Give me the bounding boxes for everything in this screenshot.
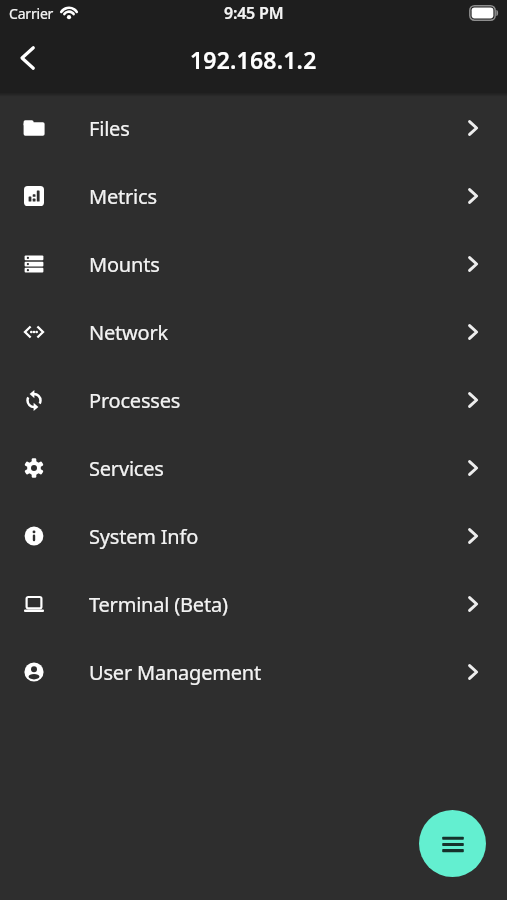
staticText: 9:45 PM bbox=[224, 2, 284, 24]
staticText: Carrier bbox=[9, 4, 54, 23]
button[interactable]: Terminal (Beta) bbox=[0, 570, 507, 638]
button[interactable]: Files bbox=[0, 94, 507, 162]
button[interactable]: Mounts bbox=[0, 230, 507, 298]
button[interactable]: Network bbox=[0, 298, 507, 366]
button[interactable] bbox=[419, 810, 486, 877]
staticText: Terminal (Beta) bbox=[89, 591, 228, 618]
button[interactable]: System Info bbox=[0, 502, 507, 570]
staticText: Mounts bbox=[89, 251, 160, 278]
staticText: Files bbox=[89, 115, 130, 142]
staticText: Metrics bbox=[89, 183, 157, 210]
button[interactable] bbox=[6, 37, 50, 81]
staticText: Network bbox=[89, 319, 169, 346]
staticText: System Info bbox=[89, 523, 199, 550]
button[interactable]: Processes bbox=[0, 366, 507, 434]
button[interactable]: User Management bbox=[0, 638, 507, 706]
button[interactable]: Metrics bbox=[0, 162, 507, 230]
button[interactable]: Services bbox=[0, 434, 507, 502]
staticText: Services bbox=[89, 455, 164, 482]
staticText: Processes bbox=[89, 387, 181, 414]
staticText: 192.168.1.2 bbox=[190, 44, 317, 75]
staticText: User Management bbox=[89, 659, 262, 686]
